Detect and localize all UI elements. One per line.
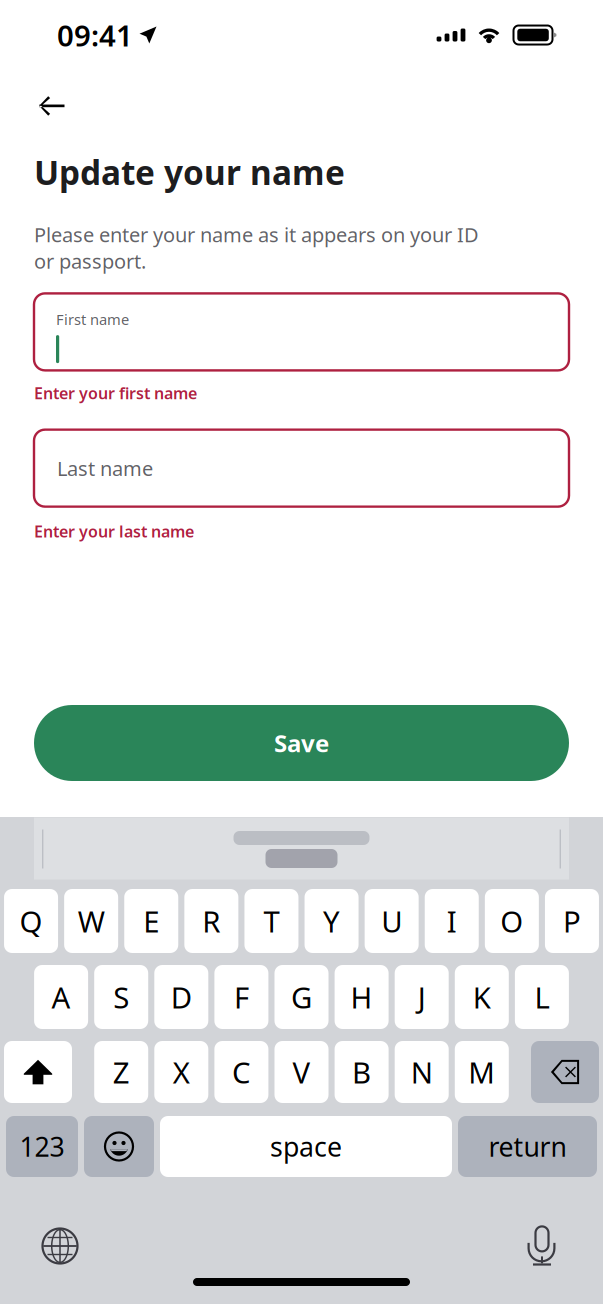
staticText: K bbox=[473, 977, 491, 1016]
staticText: T bbox=[263, 901, 279, 940]
staticText: Update your name bbox=[34, 150, 345, 194]
button[interactable]: P bbox=[545, 889, 599, 953]
button[interactable]: B bbox=[335, 1041, 389, 1103]
staticText: return bbox=[488, 1129, 566, 1164]
staticText: Last name bbox=[57, 455, 153, 481]
staticText: First name bbox=[56, 310, 129, 329]
button[interactable]: L bbox=[515, 965, 569, 1029]
staticText: D bbox=[171, 977, 192, 1016]
staticText: H bbox=[351, 977, 373, 1016]
button[interactable]: D bbox=[154, 965, 208, 1029]
staticText: 09:41 bbox=[57, 15, 133, 54]
staticText: A bbox=[52, 977, 71, 1016]
staticText: G bbox=[291, 977, 312, 1016]
staticText: Q bbox=[20, 901, 43, 940]
staticText: P bbox=[563, 901, 581, 940]
staticText: Y bbox=[323, 901, 340, 940]
button[interactable]: M bbox=[455, 1041, 509, 1103]
button[interactable]: Shift bbox=[4, 1041, 72, 1103]
staticText: I bbox=[447, 901, 457, 940]
button[interactable]: C bbox=[214, 1041, 268, 1103]
staticText: C bbox=[232, 1052, 251, 1091]
button[interactable]: Dictation bbox=[518, 1222, 566, 1270]
staticText: R bbox=[202, 901, 220, 940]
button[interactable]: Delete bbox=[531, 1041, 599, 1103]
button[interactable]: Emoji bbox=[84, 1116, 154, 1177]
button[interactable]: 123 bbox=[6, 1116, 78, 1177]
staticText: N bbox=[411, 1052, 433, 1091]
button[interactable]: A bbox=[34, 965, 88, 1029]
staticText: Z bbox=[113, 1052, 130, 1091]
button[interactable]: T bbox=[244, 889, 298, 953]
button[interactable]: E bbox=[124, 889, 178, 953]
button[interactable]: R bbox=[184, 889, 238, 953]
staticText: S bbox=[113, 977, 129, 1016]
button[interactable]: S bbox=[94, 965, 148, 1029]
button[interactable]: Save bbox=[34, 705, 569, 781]
staticText: M bbox=[468, 1052, 495, 1091]
button[interactable]: Back bbox=[34, 86, 79, 126]
staticText: O bbox=[500, 901, 523, 940]
button[interactable]: Y bbox=[305, 889, 359, 953]
button[interactable]: O bbox=[485, 889, 539, 953]
button[interactable]: return bbox=[458, 1116, 597, 1177]
button[interactable]: H bbox=[335, 965, 389, 1029]
button[interactable]: Q bbox=[4, 889, 58, 953]
button[interactable]: I bbox=[425, 889, 479, 953]
button[interactable]: Z bbox=[94, 1041, 148, 1103]
staticText: F bbox=[234, 977, 249, 1016]
staticText: E bbox=[143, 901, 159, 940]
staticText: X bbox=[173, 1052, 190, 1091]
staticText: U bbox=[381, 901, 402, 940]
staticText: Please enter your name as it appears on … bbox=[34, 221, 479, 274]
staticText: Save bbox=[274, 727, 329, 759]
button[interactable]: J bbox=[395, 965, 449, 1029]
button[interactable]: G bbox=[274, 965, 328, 1029]
staticText: W bbox=[78, 901, 105, 940]
staticText: L bbox=[534, 977, 549, 1016]
staticText: J bbox=[418, 977, 426, 1016]
button[interactable]: K bbox=[455, 965, 509, 1029]
button[interactable]: W bbox=[64, 889, 118, 953]
staticText: B bbox=[352, 1052, 371, 1091]
staticText: space bbox=[270, 1129, 342, 1164]
button[interactable]: X bbox=[154, 1041, 208, 1103]
button[interactable]: Next keyboard bbox=[36, 1222, 84, 1270]
staticText: Enter your first name bbox=[34, 382, 197, 404]
button[interactable]: N bbox=[395, 1041, 449, 1103]
staticText: 123 bbox=[19, 1129, 64, 1164]
button[interactable]: V bbox=[274, 1041, 328, 1103]
button[interactable]: U bbox=[365, 889, 419, 953]
staticText: Enter your last name bbox=[34, 521, 194, 542]
button[interactable]: space bbox=[160, 1116, 452, 1177]
staticText: V bbox=[292, 1052, 310, 1091]
button[interactable]: F bbox=[214, 965, 268, 1029]
